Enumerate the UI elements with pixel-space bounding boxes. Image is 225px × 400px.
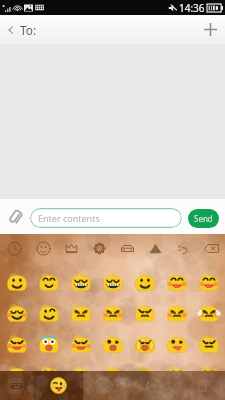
button[interactable]: Emoji [0, 328, 33, 359]
button[interactable]: Nature [85, 234, 113, 262]
button[interactable]: Enter contents [30, 208, 182, 228]
button[interactable]: Emoji [97, 297, 129, 328]
button[interactable]: GIF [178, 371, 225, 400]
staticText: Send [194, 213, 213, 224]
button[interactable]: Emoji [33, 266, 65, 297]
button[interactable]: Delete [197, 234, 225, 262]
button[interactable]: Emoji [65, 359, 97, 390]
button[interactable]: Gifts [57, 234, 85, 262]
button[interactable]: Emoji [193, 359, 225, 390]
button[interactable]: Emoji [193, 328, 225, 359]
button[interactable]: Emoji [0, 297, 33, 328]
button[interactable]: To: [0, 15, 47, 44]
staticText: To: [20, 22, 37, 38]
button[interactable]: Emoji [161, 266, 193, 297]
button[interactable]: Kaomoji [130, 371, 178, 400]
button[interactable]: Emoji [65, 328, 97, 359]
button[interactable]: Emoji [161, 328, 193, 359]
button[interactable]: Art [82, 371, 130, 400]
button[interactable]: Add recipient [195, 15, 225, 44]
button[interactable]: Emoji [129, 297, 161, 328]
button[interactable]: Emoji [161, 297, 193, 328]
button[interactable]: Send [188, 209, 219, 228]
button[interactable]: Emoji [65, 297, 97, 328]
button[interactable]: Emoji [161, 359, 193, 390]
button[interactable]: Emoji [97, 359, 129, 390]
button[interactable]: Emoji [33, 359, 65, 390]
button[interactable]: Emoji [129, 266, 161, 297]
button[interactable]: Emoji [97, 266, 129, 297]
button[interactable]: Emoji [0, 359, 33, 390]
button[interactable]: Emoji [34, 371, 82, 400]
button[interactable]: Emoji [193, 297, 225, 328]
staticText: Enter contents [38, 212, 100, 224]
button[interactable]: Emoji [97, 328, 129, 359]
button[interactable]: Emoji [33, 328, 65, 359]
button[interactable]: Symbols [141, 234, 169, 262]
button[interactable]: Emoji [193, 266, 225, 297]
button[interactable]: Emoji [33, 297, 65, 328]
button[interactable]: Emoticons [169, 234, 197, 262]
button[interactable]: Keyboard [0, 371, 34, 400]
button[interactable]: Emoji [129, 328, 161, 359]
button[interactable]: Attach file [4, 206, 25, 227]
button[interactable]: Emoji [129, 359, 161, 390]
button[interactable]: Smileys [29, 234, 57, 262]
button[interactable]: Recent [0, 234, 29, 262]
button[interactable]: Travel [113, 234, 141, 262]
button[interactable]: Emoji [0, 266, 33, 297]
button[interactable]: Emoji [65, 266, 97, 297]
staticText: 14:36 [179, 1, 205, 15]
